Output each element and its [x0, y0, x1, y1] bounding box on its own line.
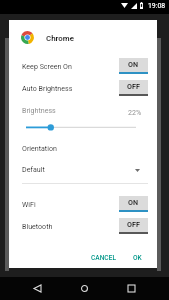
button[interactable]: Home	[73, 277, 96, 300]
button[interactable]: Keep Screen On	[22, 58, 148, 74]
button[interactable]: OK	[130, 250, 144, 266]
button[interactable]: OFF	[119, 80, 148, 96]
button[interactable]: Back	[26, 277, 49, 300]
staticText: Keep Screen On	[22, 62, 72, 70]
staticText: Brightness	[22, 106, 56, 114]
staticText: 19:08	[148, 2, 166, 10]
staticText: CANCEL	[91, 254, 116, 262]
staticText: OFF	[127, 82, 140, 90]
staticText: Bluetooth	[22, 222, 53, 230]
staticText: OK	[133, 254, 142, 262]
staticText: Default	[22, 165, 45, 173]
staticText: OFF	[127, 220, 140, 228]
staticText: ON	[128, 60, 139, 68]
button[interactable]: OFF	[119, 218, 148, 234]
button[interactable]: CANCEL	[89, 250, 117, 266]
staticText: 22%	[128, 108, 142, 116]
staticText: WiFi	[22, 200, 36, 208]
button[interactable]: WiFi	[22, 196, 148, 212]
button[interactable]: Bluetooth	[22, 218, 148, 234]
button[interactable]: ON	[119, 58, 148, 74]
staticText: Orientation	[22, 144, 57, 152]
staticText: ON	[128, 198, 139, 206]
staticText: Auto Brightness	[22, 84, 73, 92]
button[interactable]: ON	[119, 196, 148, 212]
button[interactable]: Auto Brightness	[22, 80, 148, 96]
button[interactable]: Orientation: Default	[22, 163, 148, 184]
button[interactable]: Recent apps	[120, 277, 143, 300]
staticText: Chrome	[46, 34, 74, 43]
button[interactable]	[24, 121, 138, 134]
